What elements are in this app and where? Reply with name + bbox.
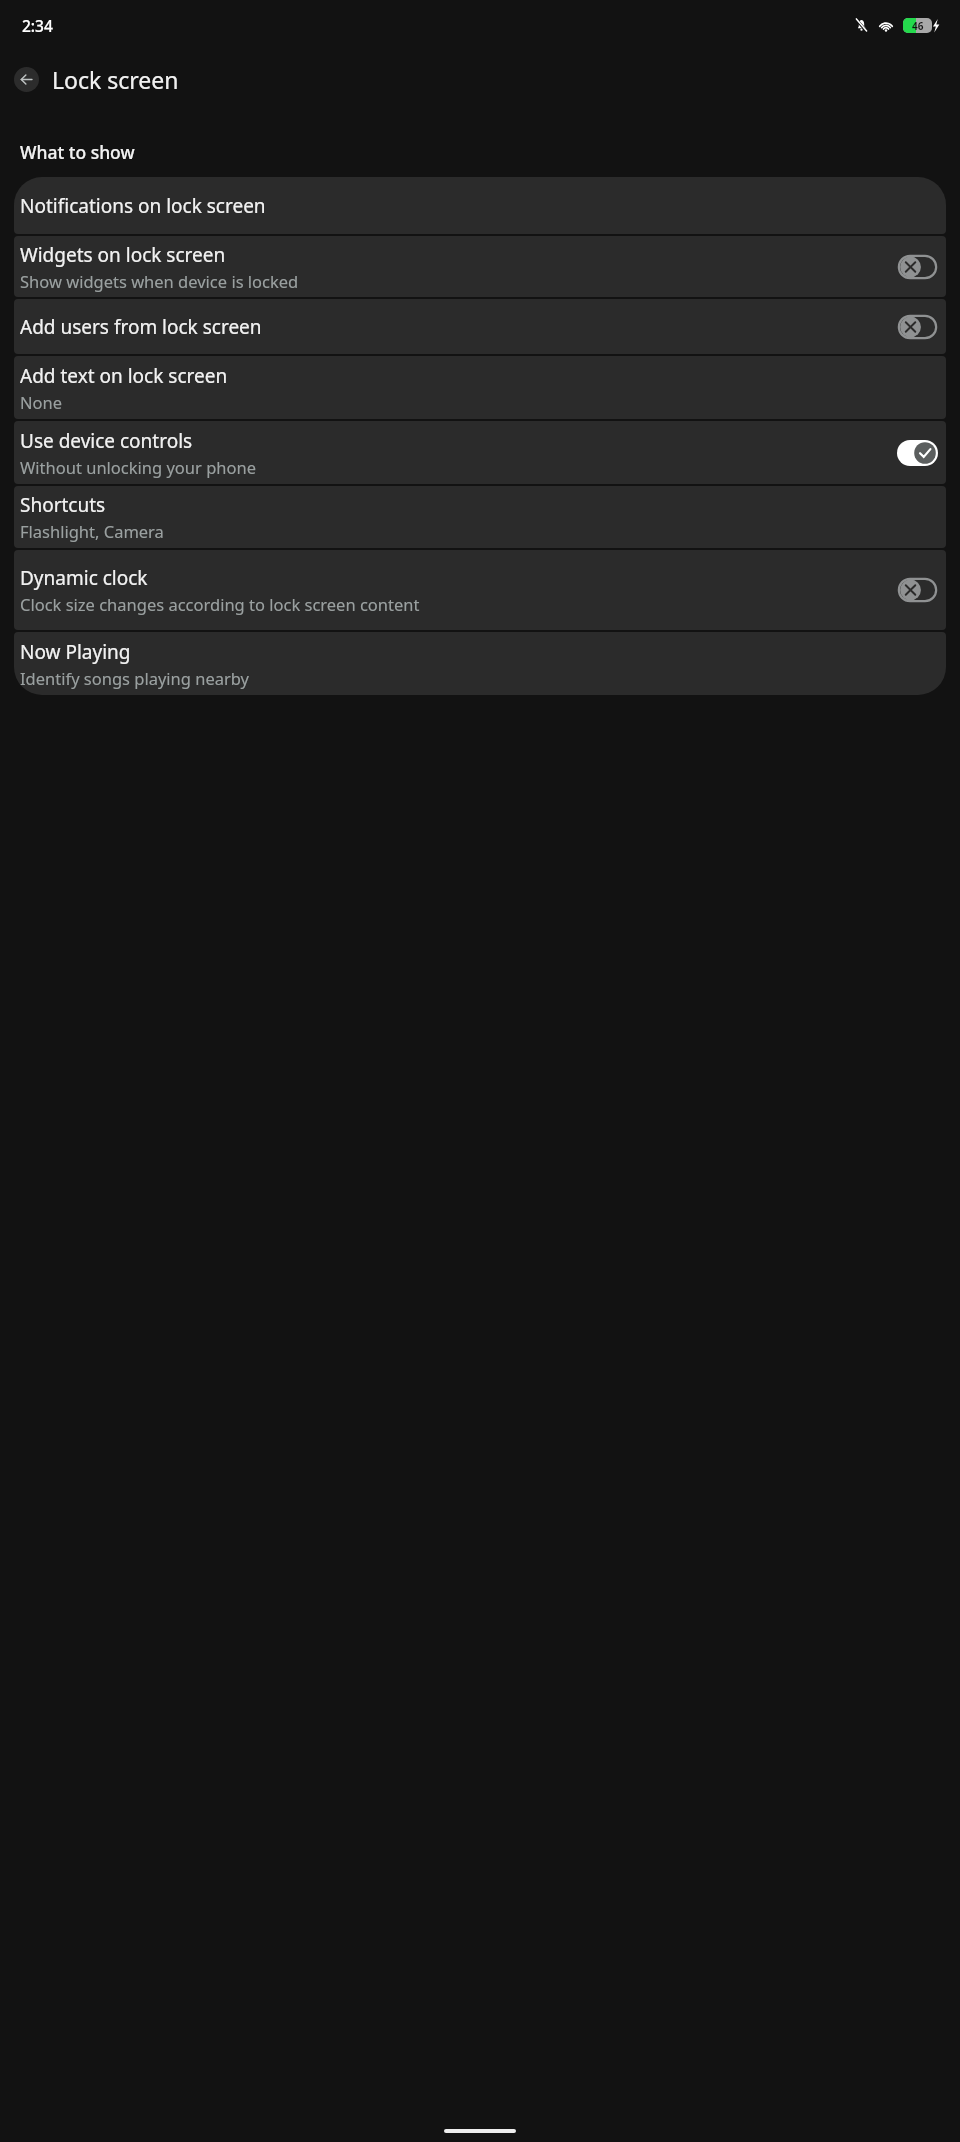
staticText: Without unlocking your phone <box>20 456 256 478</box>
button[interactable]: Back <box>14 67 39 92</box>
button[interactable]: Toggle off <box>897 577 938 603</box>
staticText: Lock screen <box>52 64 179 95</box>
staticText: None <box>20 391 63 413</box>
staticText: Add text on lock screen <box>20 363 228 389</box>
staticText: Widgets on lock screen <box>20 242 226 268</box>
button[interactable]: Widgets on lock screen <box>14 236 946 297</box>
staticText: Flashlight, Camera <box>20 520 164 542</box>
button[interactable]: Use device controls <box>14 421 946 484</box>
staticText: Identify songs playing nearby <box>20 667 250 689</box>
button[interactable]: Dynamic clock <box>14 550 946 630</box>
staticText: Clock size changes according to lock scr… <box>20 593 420 615</box>
staticText: Notifications on lock screen <box>20 193 266 219</box>
button[interactable]: Toggle off <box>897 254 938 280</box>
staticText: Add users from lock screen <box>20 314 262 340</box>
staticText: 2:34 <box>22 15 53 36</box>
staticText: Shortcuts <box>20 492 106 518</box>
button[interactable]: Now Playing <box>14 632 946 695</box>
button[interactable]: Shortcuts <box>14 486 946 548</box>
staticText: Now Playing <box>20 639 131 665</box>
button[interactable]: Toggle on <box>897 440 938 466</box>
staticText: What to show <box>20 140 135 164</box>
staticText: Show widgets when device is locked <box>20 270 299 292</box>
button[interactable]: Toggle off <box>897 314 938 340</box>
button[interactable]: Add users from lock screen <box>14 299 946 354</box>
staticText: Use device controls <box>20 428 193 454</box>
staticText: 46 <box>912 19 924 33</box>
staticText: Dynamic clock <box>20 565 148 591</box>
button[interactable]: Notifications on lock screen <box>14 177 946 234</box>
button[interactable]: Add text on lock screen <box>14 356 946 419</box>
